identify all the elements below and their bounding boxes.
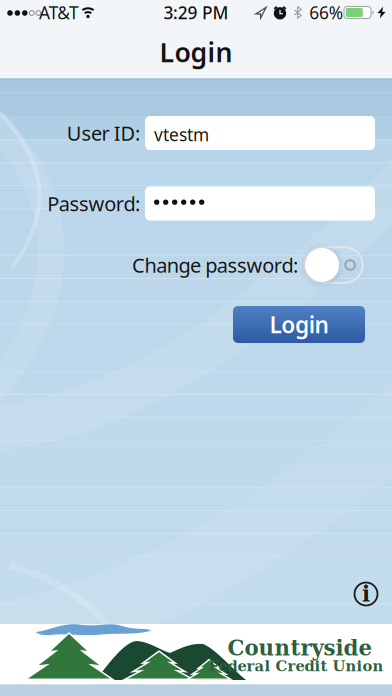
staticText: vtestm	[154, 123, 209, 146]
button[interactable]: vtestm	[145, 116, 375, 150]
button[interactable]	[145, 186, 375, 220]
button[interactable]	[305, 247, 363, 283]
staticText: Change password:	[132, 252, 298, 278]
button[interactable]: i	[353, 581, 378, 606]
staticText: Password:	[47, 190, 140, 217]
staticText: User ID:	[67, 120, 140, 146]
staticText: Federal Credit Union	[208, 657, 383, 675]
staticText: Countryside	[227, 635, 372, 661]
staticText: 3:29 PM	[163, 1, 229, 24]
staticText: i	[362, 581, 370, 607]
staticText: Login	[270, 309, 328, 339]
staticText: 66%	[309, 1, 343, 24]
staticText: AT&T	[39, 1, 79, 24]
staticText: Login	[159, 34, 232, 70]
button[interactable]: Login	[233, 306, 365, 343]
